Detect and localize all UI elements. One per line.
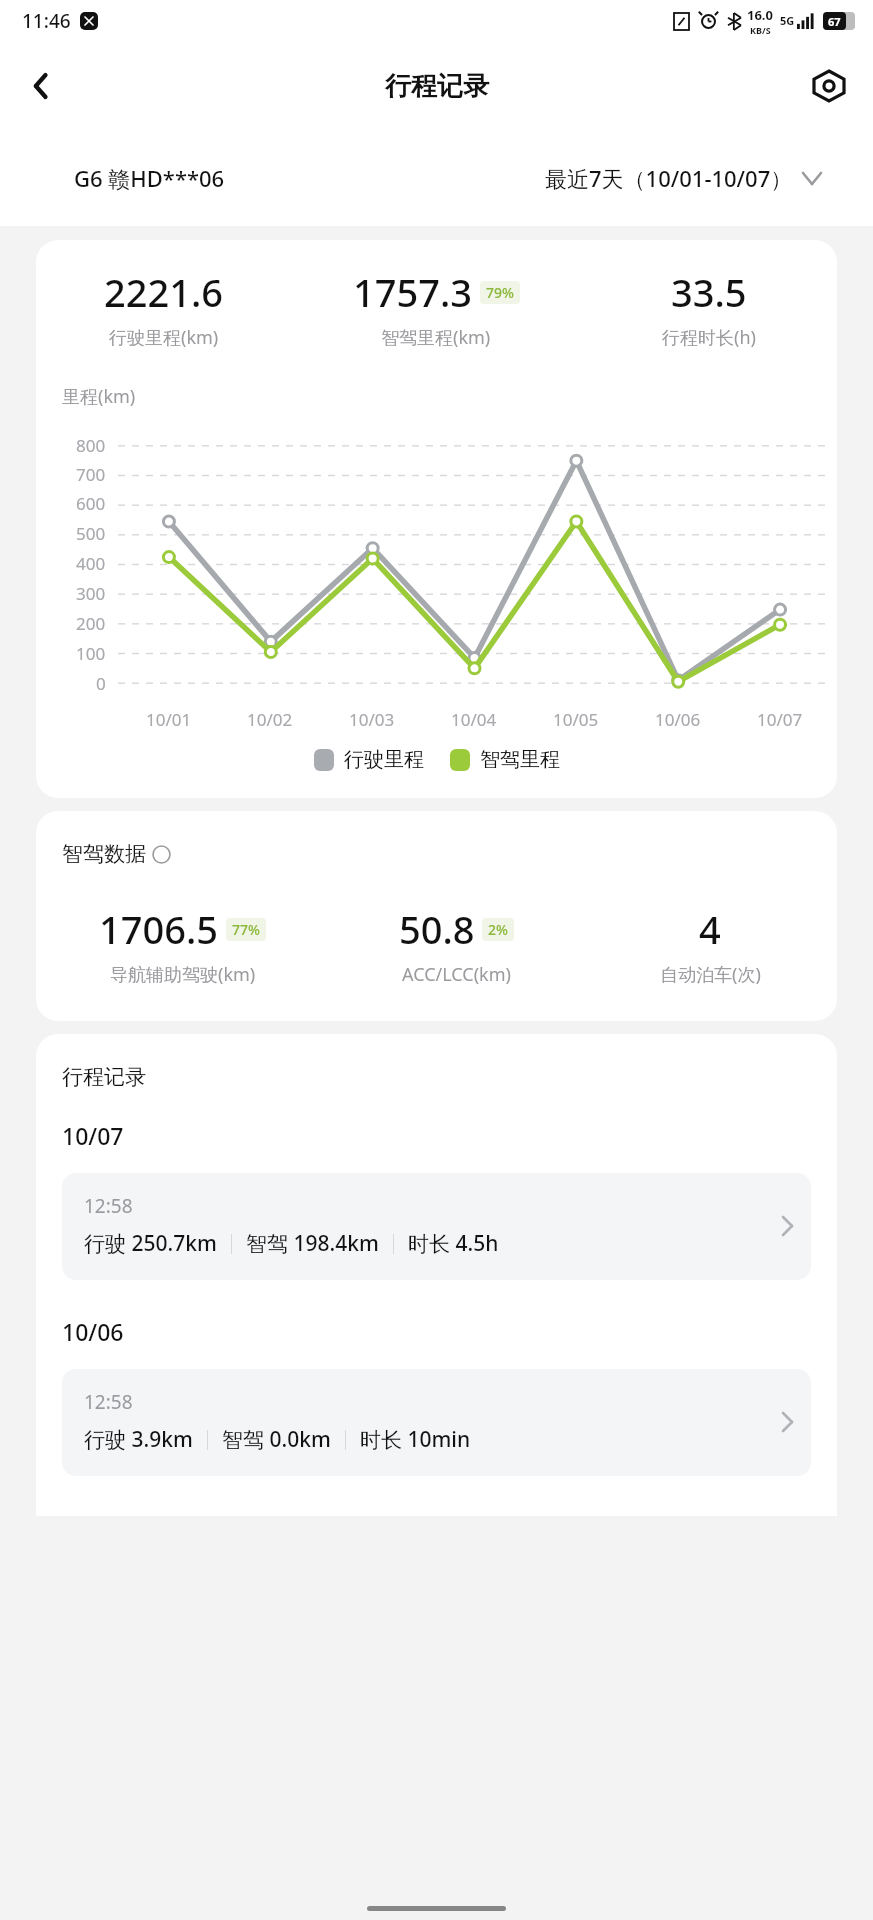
button[interactable]: 12:58: [62, 1173, 811, 1280]
staticText: 100: [76, 642, 106, 665]
staticText: 10/07: [62, 1120, 124, 1151]
staticText: ACC/LCC(km): [402, 962, 511, 987]
staticText: 500: [76, 522, 106, 545]
staticText: 2%: [488, 920, 508, 939]
button[interactable]: G6 赣HD***06: [74, 163, 225, 193]
staticText: 行程记录: [385, 70, 489, 103]
staticText: 智驾里程: [480, 747, 560, 772]
staticText: 400: [76, 552, 106, 575]
staticText: 时长 10min: [360, 1425, 471, 1454]
staticText: 10/06: [655, 708, 701, 731]
staticText: 12:58: [84, 1389, 133, 1415]
staticText: 导航辅助驾驶(km): [110, 962, 256, 987]
staticText: 4: [699, 903, 721, 955]
staticText: 10/01: [146, 708, 192, 731]
staticText: 800: [76, 434, 106, 457]
staticText: 10/04: [451, 708, 497, 731]
staticText: 50.8: [399, 903, 475, 955]
button[interactable]: 12:58: [62, 1369, 811, 1476]
staticText: 1706.5: [99, 903, 219, 955]
staticText: 行驶里程(km): [109, 325, 219, 350]
button[interactable]: 最近7天（10/01-10/07）: [545, 163, 821, 193]
staticText: 5G: [780, 13, 795, 28]
staticText: 77%: [232, 920, 260, 939]
staticText: 行驶里程: [344, 747, 424, 772]
staticText: 行程记录: [62, 1064, 146, 1090]
staticText: 0: [96, 672, 106, 695]
staticText: 67: [828, 14, 841, 29]
staticText: 自动泊车(次): [660, 962, 761, 987]
staticText: G6 赣HD***06: [74, 163, 225, 193]
staticText: 10/02: [247, 708, 293, 731]
button[interactable]: 智驾数据: [62, 841, 171, 867]
staticText: 10/06: [62, 1316, 124, 1347]
staticText: 300: [76, 582, 106, 605]
staticText: 10/05: [553, 708, 599, 731]
staticText: 12:58: [84, 1193, 133, 1219]
staticText: 智驾 0.0km: [222, 1425, 331, 1454]
button[interactable]: Back: [14, 58, 70, 114]
staticText: 行驶 250.7km: [84, 1229, 217, 1258]
staticText: 10/07: [757, 708, 803, 731]
staticText: 79%: [486, 283, 514, 302]
staticText: 智驾里程(km): [381, 325, 491, 350]
staticText: 智驾 198.4km: [246, 1229, 379, 1258]
staticText: 最近7天（10/01-10/07）: [545, 163, 793, 193]
staticText: 行驶 3.9km: [84, 1425, 193, 1454]
staticText: 10/03: [349, 708, 395, 731]
staticText: 智驾数据: [62, 841, 146, 867]
staticText: 里程(km): [62, 384, 136, 409]
staticText: 16.0: [747, 6, 773, 24]
button[interactable]: Settings: [801, 58, 857, 114]
staticText: KB/S: [750, 24, 771, 36]
staticText: 600: [76, 492, 106, 515]
staticText: 1757.3: [353, 266, 473, 318]
staticText: 33.5: [671, 266, 747, 318]
staticText: 200: [76, 612, 106, 635]
staticText: 2221.6: [104, 266, 224, 318]
staticText: 11:46: [22, 8, 71, 34]
staticText: 行程时长(h): [662, 325, 756, 350]
staticText: 时长 4.5h: [408, 1229, 499, 1258]
staticText: 700: [76, 463, 106, 486]
